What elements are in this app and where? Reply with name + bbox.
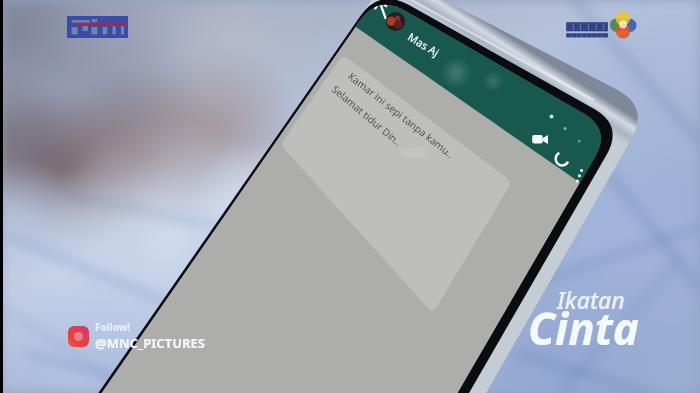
staticText: @MNC_PICTURES [95, 334, 205, 352]
staticText: Cinta [528, 298, 639, 358]
staticText: Follow! [95, 320, 131, 334]
staticText: Selamat tidur Din.. [329, 82, 405, 149]
staticText: Kamar ini sepi tanpa kamu.. [345, 69, 457, 161]
staticText: Ikatan [557, 284, 625, 315]
staticText: Mas Aj [405, 29, 443, 60]
